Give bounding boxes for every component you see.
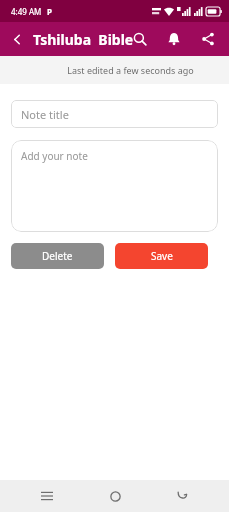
button[interactable]: Save (115, 243, 208, 269)
button[interactable]: Back (6, 28, 28, 50)
staticText: Delete (42, 249, 73, 263)
button[interactable]: Share (195, 26, 221, 52)
staticText: Note title (21, 107, 69, 122)
staticText: P (47, 6, 52, 17)
button[interactable]: Recent apps (26, 480, 68, 512)
button[interactable]: Search (127, 26, 153, 52)
button[interactable]: Add your note (11, 140, 218, 232)
button[interactable]: Back (161, 480, 203, 512)
button[interactable]: Delete (11, 243, 104, 269)
staticText: 4:49 AM (11, 6, 42, 17)
staticText: Last edited a few seconds ago (67, 64, 194, 76)
button[interactable]: Note title (11, 100, 218, 128)
staticText: Add your note (21, 149, 88, 163)
staticText: Save (151, 249, 173, 263)
staticText: Tshiluba Bible (33, 30, 134, 49)
button[interactable]: Notifications (161, 26, 187, 52)
button[interactable]: Home (94, 480, 136, 512)
